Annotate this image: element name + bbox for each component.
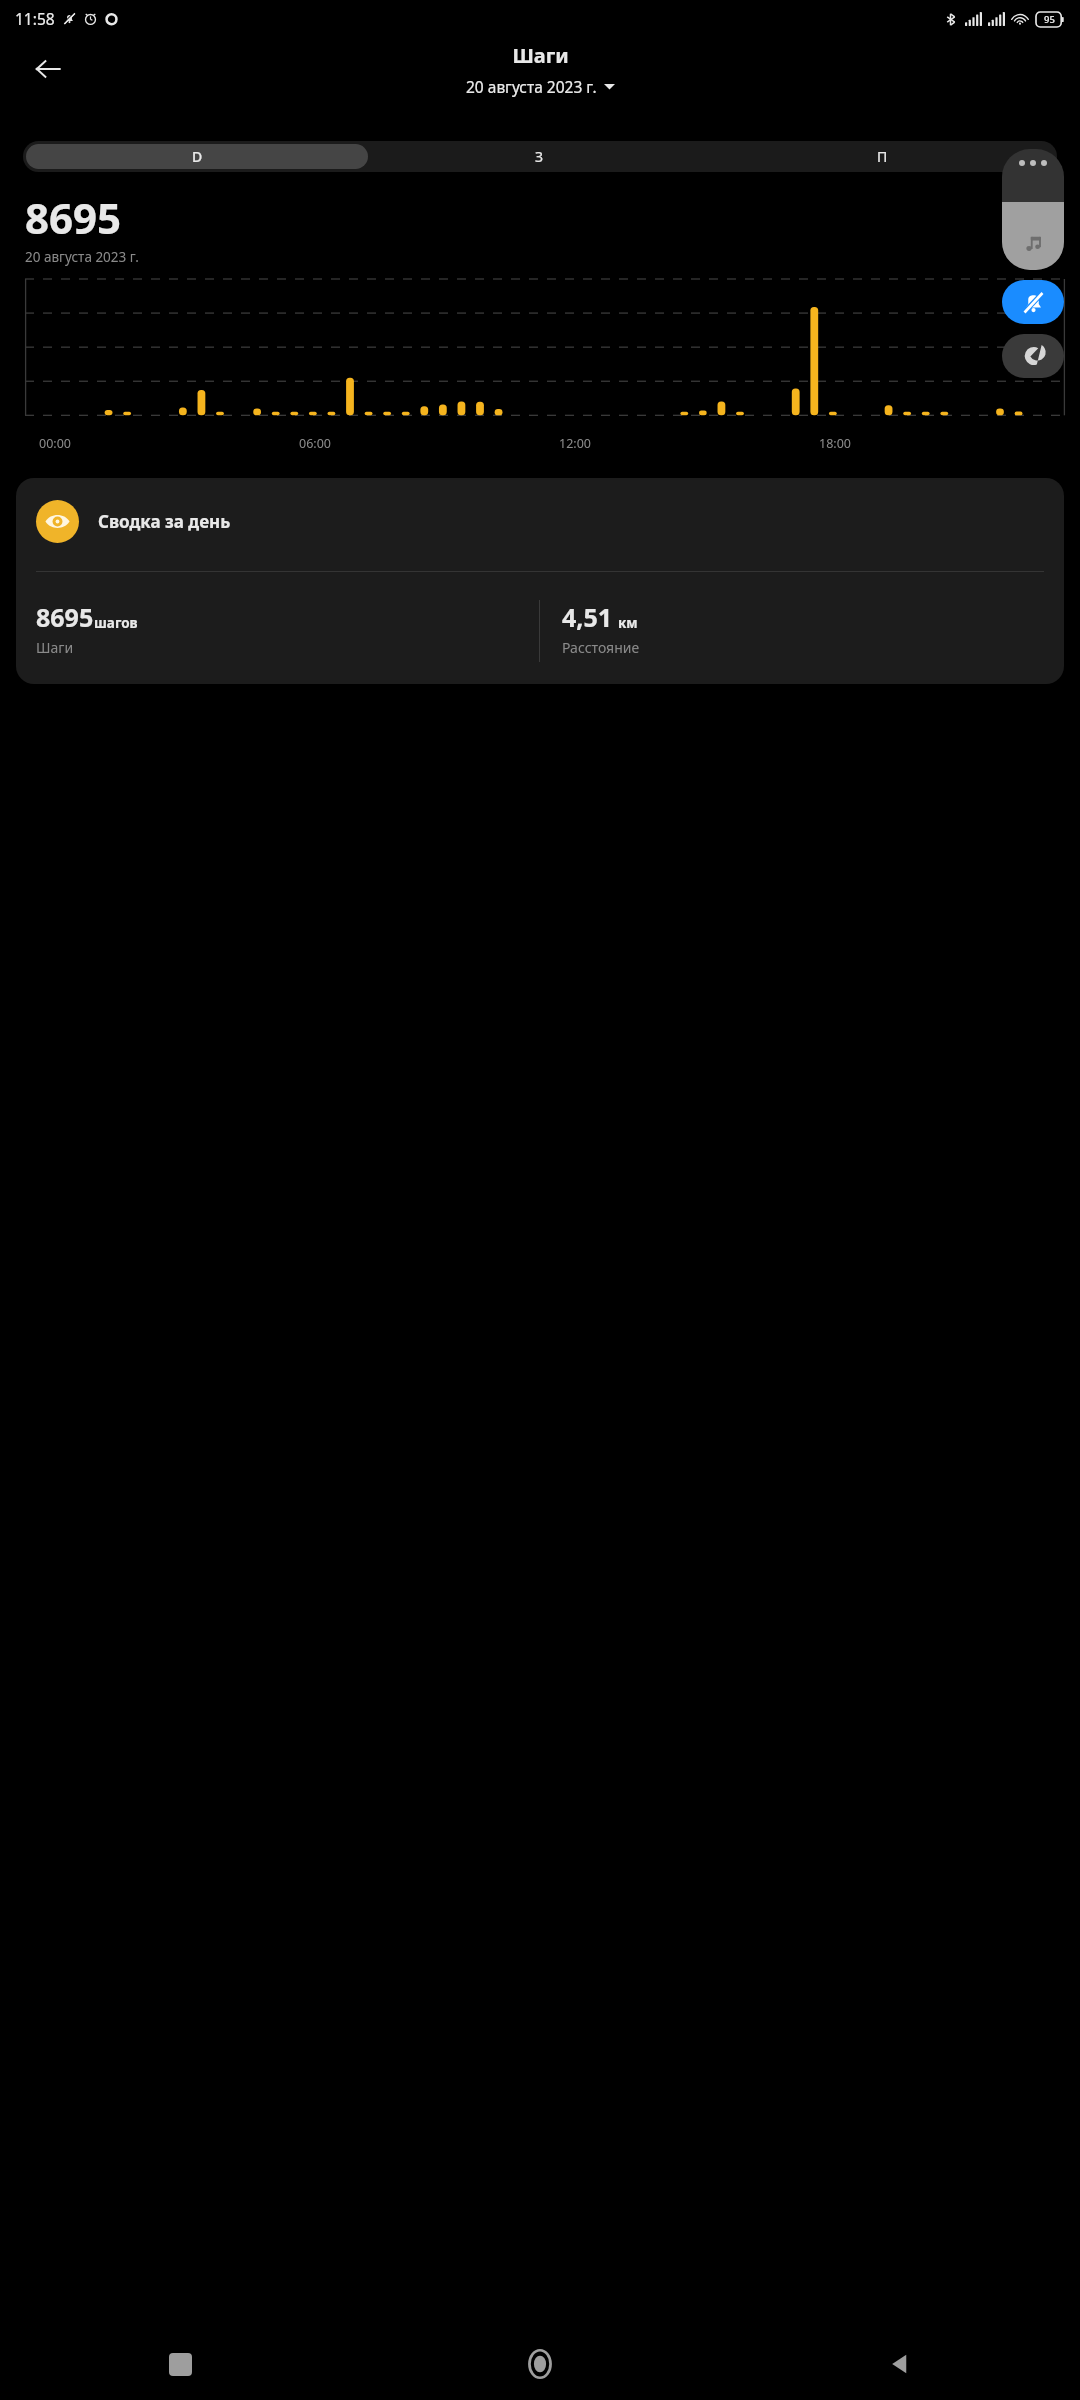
button[interactable]: Недавние [0, 2328, 360, 2400]
button[interactable]: Громкость мультимедиа [1002, 149, 1064, 270]
button[interactable]: З [368, 144, 711, 169]
staticText: 4,51 [562, 600, 613, 634]
staticText: 06:00 [299, 435, 331, 452]
staticText: шагов [94, 614, 138, 632]
button[interactable]: D [26, 144, 368, 169]
button[interactable]: Не беспокоить [1002, 334, 1064, 378]
staticText: км [618, 614, 638, 632]
staticText: 95 [1044, 13, 1055, 26]
staticText: Шаги [512, 42, 569, 69]
staticText: 20 августа 2023 г. [25, 248, 139, 266]
staticText: П [877, 147, 888, 166]
staticText: 8695 [36, 600, 94, 634]
staticText: Расстояние [562, 638, 640, 657]
staticText: 00:00 [39, 435, 71, 452]
button[interactable]: Сводка за день [16, 478, 1064, 684]
staticText: 20 августа 2023 г. [466, 76, 597, 97]
button[interactable]: Назад [22, 43, 74, 95]
button[interactable]: 20 августа 2023 г. [462, 74, 619, 99]
staticText: Шаги [36, 638, 74, 657]
staticText: 11:58 [15, 8, 55, 29]
button[interactable]: Главный экран [360, 2328, 720, 2400]
button[interactable]: Назад [720, 2328, 1080, 2400]
staticText: З [535, 147, 544, 166]
staticText: 12:00 [559, 435, 591, 452]
staticText: 18:00 [819, 435, 851, 452]
staticText: D [192, 147, 203, 166]
button[interactable]: Без звука [1002, 280, 1064, 324]
staticText: Сводка за день [98, 510, 231, 533]
button[interactable]: П [711, 144, 1054, 169]
staticText: 8695 [25, 189, 122, 246]
